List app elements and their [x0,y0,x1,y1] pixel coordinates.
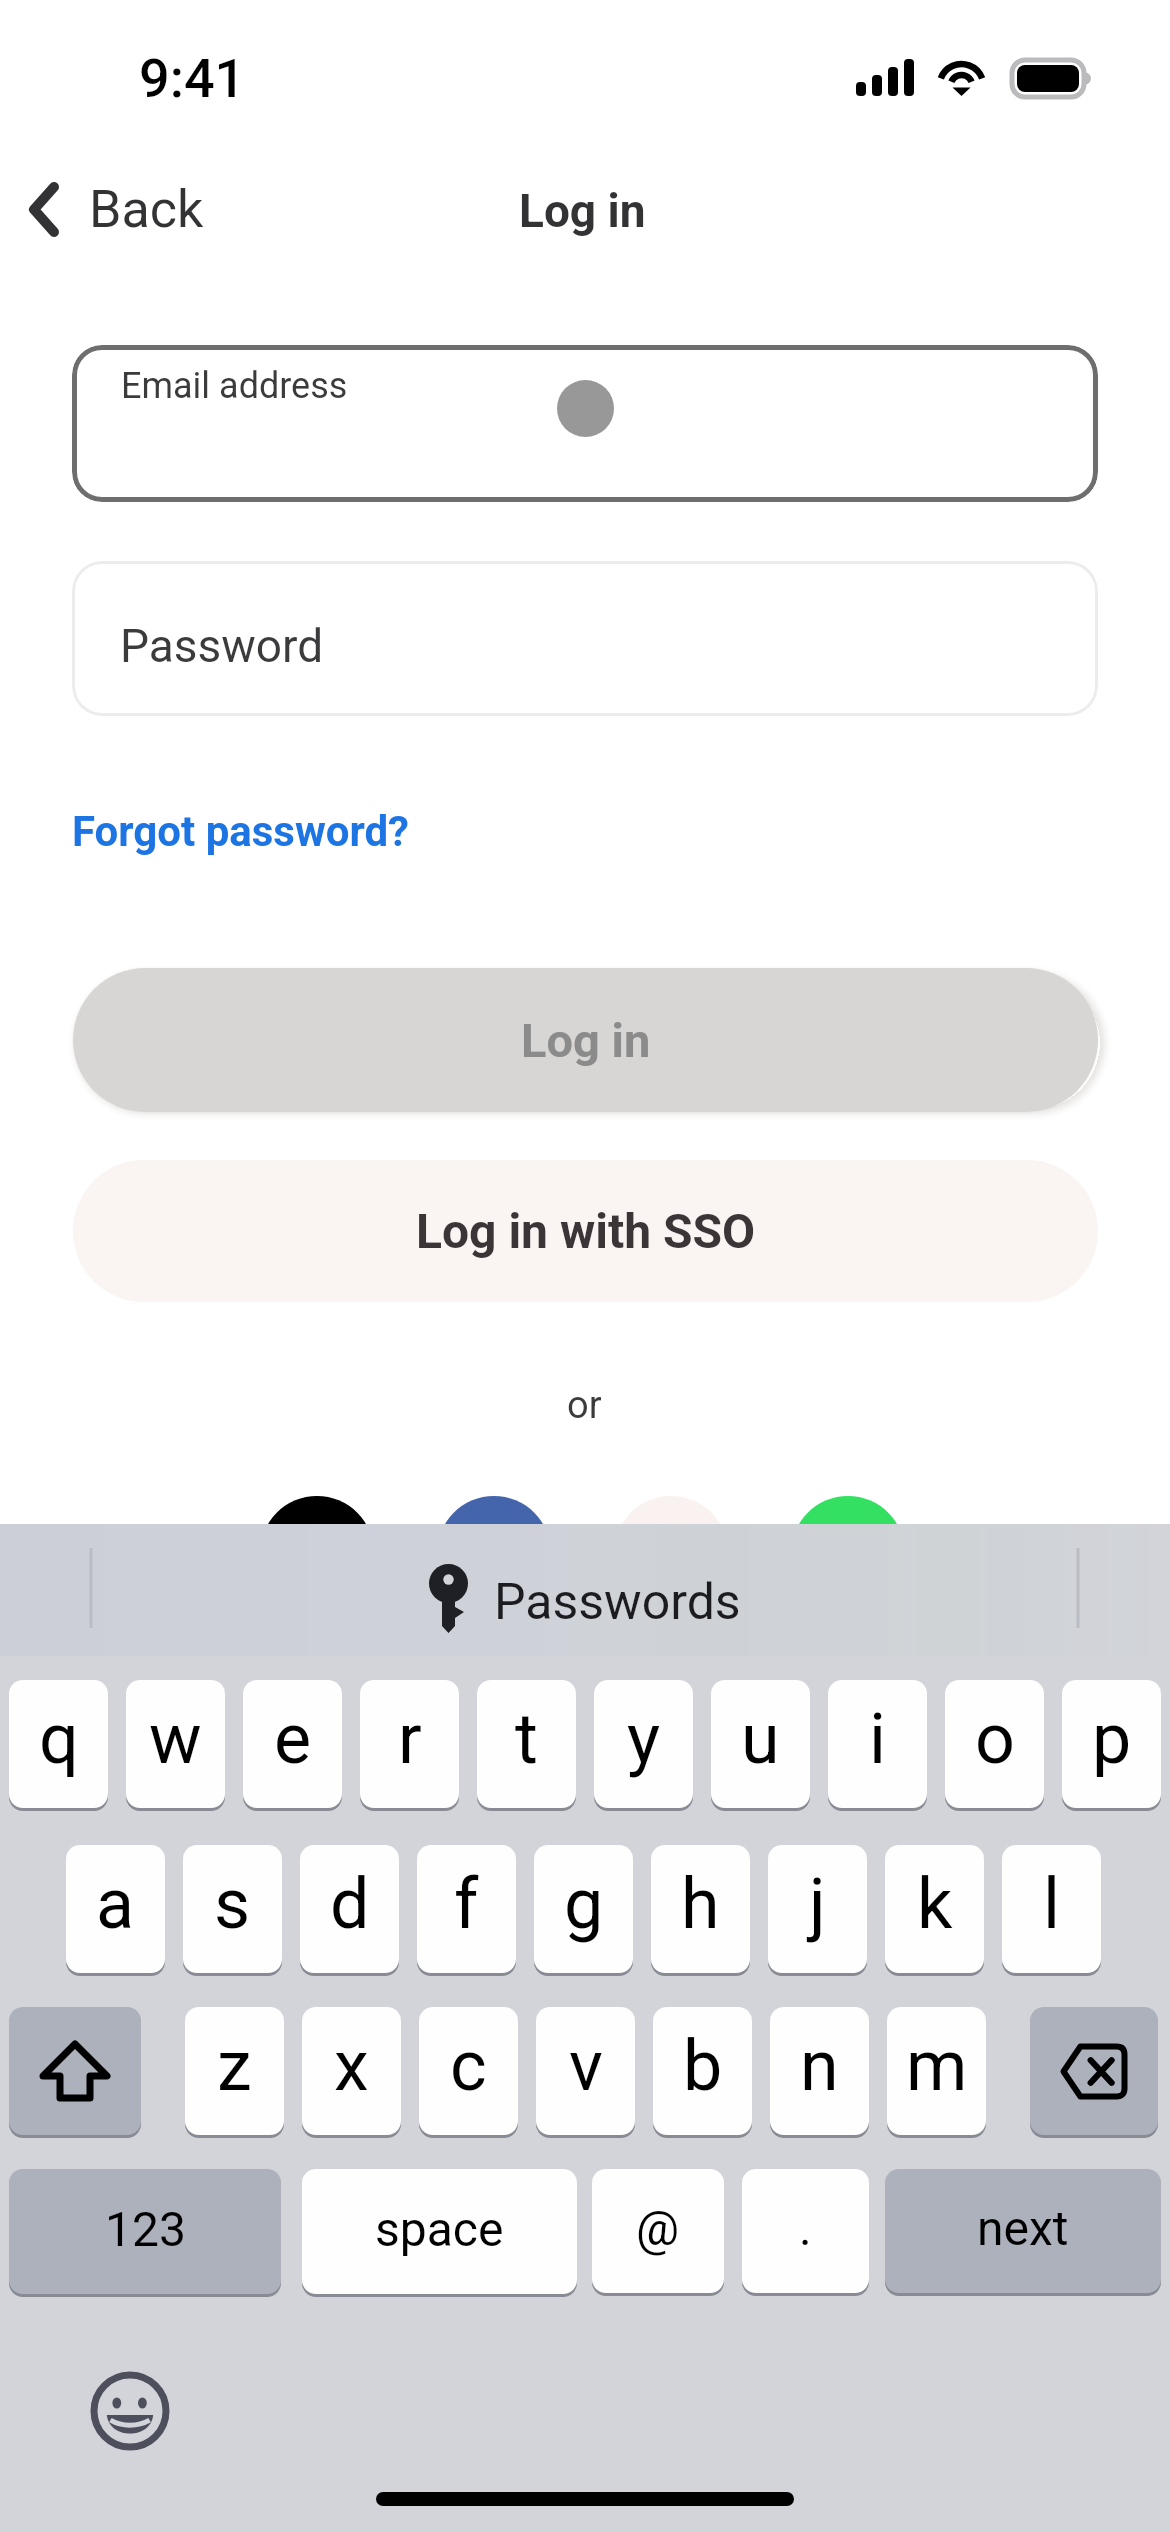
staticText: w [149,1698,202,1780]
button[interactable]: s [183,1845,282,1973]
button[interactable]: . [742,2169,869,2293]
button[interactable]: e [243,1680,342,1808]
staticText: l [1043,1863,1061,1945]
staticText: g [564,1863,604,1945]
staticText: Back [89,179,204,240]
staticText: Email address [121,365,348,407]
button[interactable]: j [768,1845,867,1973]
staticText: p [1092,1698,1132,1780]
button[interactable]: g [534,1845,633,1973]
button[interactable]: Social sign-in option 3 [614,1496,728,1610]
staticText: d [330,1863,370,1945]
button[interactable]: Email address [72,345,1098,502]
staticText: 9:41 [139,47,246,110]
staticText: space [375,2201,504,2257]
button[interactable]: k [885,1845,984,1973]
staticText: y [627,1698,661,1780]
staticText: t [515,1698,538,1780]
staticText: Log in [521,1013,651,1068]
button[interactable]: f [417,1845,516,1973]
button[interactable]: Log in [73,968,1098,1112]
staticText: a [96,1863,135,1945]
staticText: next [977,2200,1069,2256]
button[interactable]: n [770,2007,869,2135]
button[interactable]: Log in with SSO [73,1160,1098,1302]
button[interactable]: Social sign-in option 4 [791,1496,905,1610]
button[interactable]: b [653,2007,752,2135]
staticText: Passwords [494,1573,741,1632]
staticText: h [681,1863,720,1945]
staticText: q [39,1698,79,1780]
button[interactable]: Password [72,561,1098,716]
staticText: c [450,2025,487,2107]
button[interactable]: i [828,1680,927,1808]
staticText: or [567,1383,602,1428]
staticText: e [274,1698,312,1780]
staticText: 123 [105,2201,186,2257]
button[interactable]: Passwords autofill [424,1560,746,1640]
staticText: r [398,1698,422,1780]
staticText: u [741,1698,780,1780]
button[interactable]: Shift [9,2007,141,2135]
staticText: z [217,2025,252,2107]
button[interactable]: Social sign-in option 1 [260,1496,374,1610]
staticText: j [809,1863,826,1945]
button[interactable]: x [302,2007,401,2135]
staticText: m [906,2025,968,2107]
staticText: Log in [519,184,646,238]
staticText: k [917,1863,953,1945]
staticText: Forgot password? [72,807,410,856]
button[interactable]: t [477,1680,576,1808]
staticText: n [800,2025,839,2107]
button[interactable]: y [594,1680,693,1808]
staticText: x [334,2025,369,2107]
button[interactable]: @ [592,2169,724,2293]
button[interactable]: r [360,1680,459,1808]
button[interactable]: Social sign-in option 2 [437,1496,551,1610]
staticText: v [569,2025,603,2107]
button[interactable]: next [885,2169,1161,2293]
staticText: f [454,1863,479,1945]
other: Back [24,182,64,237]
staticText: Log in with SSO [416,1203,756,1259]
button[interactable]: m [887,2007,986,2135]
staticText: i [869,1698,887,1780]
button[interactable]: 123 [9,2169,281,2294]
button[interactable]: d [300,1845,399,1973]
staticText: . [799,2200,812,2256]
button[interactable]: c [419,2007,518,2135]
button[interactable]: l [1002,1845,1101,1973]
button[interactable]: v [536,2007,635,2135]
button[interactable]: p [1062,1680,1161,1808]
button[interactable]: a [66,1845,165,1973]
button[interactable]: q [9,1680,108,1808]
button[interactable]: Emoji keyboard [90,2371,170,2451]
staticText: b [683,2025,723,2107]
button[interactable]: Backspace [1030,2007,1158,2135]
staticText: o [975,1698,1015,1780]
button[interactable]: u [711,1680,810,1808]
button[interactable]: Back [8,167,220,252]
staticText: Password [120,619,324,673]
button[interactable]: z [185,2007,284,2135]
button[interactable]: w [126,1680,225,1808]
button[interactable]: Forgot password? [60,796,398,845]
staticText: s [214,1863,251,1945]
button[interactable]: space [302,2169,577,2294]
button[interactable]: o [945,1680,1044,1808]
button[interactable]: h [651,1845,750,1973]
staticText: @ [636,2200,680,2256]
